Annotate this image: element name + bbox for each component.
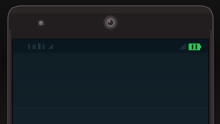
button[interactable]: Screen content: [0, 0, 195, 84]
